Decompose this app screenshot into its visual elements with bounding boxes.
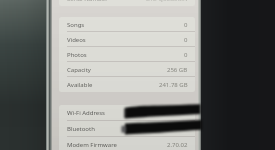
staticText: Modem Firmware xyxy=(67,141,117,149)
staticText: 0 xyxy=(184,51,188,59)
button[interactable]: Capacity xyxy=(59,62,195,77)
staticText: Serial Number xyxy=(67,0,108,3)
staticText: Available xyxy=(67,81,93,89)
staticText: Videos xyxy=(67,36,86,44)
staticText: 0 xyxy=(184,36,188,44)
staticText: 256 GB xyxy=(167,66,188,74)
button[interactable]: Photos xyxy=(59,47,195,62)
button[interactable]: Videos xyxy=(59,32,195,47)
button[interactable]: Bluetooth xyxy=(59,121,195,137)
button[interactable]: Modem Firmware xyxy=(59,137,195,150)
staticText: Songs xyxy=(67,21,85,29)
button[interactable]: Available xyxy=(59,77,195,92)
staticText: Photos xyxy=(67,51,87,59)
button[interactable]: Songs xyxy=(59,17,195,32)
staticText: Wi-Fi Address xyxy=(67,109,105,117)
staticText: DNPQ3LG5MN xyxy=(146,0,188,3)
staticText: Capacity xyxy=(67,66,91,74)
staticText: 0 xyxy=(184,21,188,29)
button[interactable]: Wi-Fi Address xyxy=(59,105,195,121)
staticText: 2.70.02 xyxy=(167,141,188,149)
staticText: Bluetooth xyxy=(67,125,95,133)
staticText: 241.78 GB xyxy=(159,81,188,89)
